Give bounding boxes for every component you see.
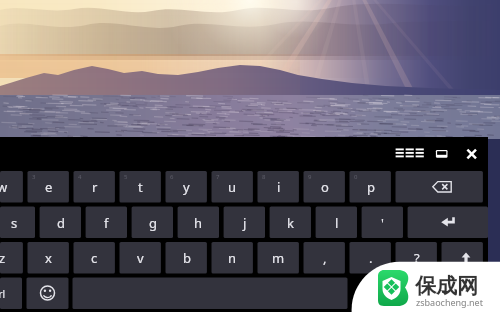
button[interactable]: s xyxy=(0,207,35,239)
staticText: 3 xyxy=(32,173,36,181)
staticText: . xyxy=(369,249,373,267)
button[interactable]: o xyxy=(304,171,345,203)
button[interactable]: d xyxy=(40,207,81,239)
button[interactable]: f xyxy=(86,207,127,239)
button[interactable]: x xyxy=(28,242,69,274)
staticText: zsbaocheng.net xyxy=(416,296,483,308)
staticText: f xyxy=(104,214,109,232)
staticText: 9 xyxy=(308,173,312,181)
staticText: p xyxy=(367,178,375,196)
staticText: v xyxy=(137,249,144,267)
staticText: ? xyxy=(414,249,420,267)
staticText: ' xyxy=(381,214,384,232)
staticText: b xyxy=(183,249,191,267)
staticText: , xyxy=(323,249,327,267)
button[interactable]: g xyxy=(132,207,173,239)
staticText: 6 xyxy=(170,173,174,181)
staticText: d xyxy=(57,214,65,232)
staticText: 5 xyxy=(124,173,128,181)
staticText: 7 xyxy=(216,173,220,181)
staticText: z xyxy=(0,249,6,267)
button[interactable]: u xyxy=(212,171,253,203)
button[interactable]: i xyxy=(258,171,299,203)
staticText: m xyxy=(272,249,285,267)
button[interactable]: c xyxy=(74,242,115,274)
staticText: i xyxy=(277,178,281,196)
button[interactable]: v xyxy=(120,242,161,274)
button[interactable]: ' xyxy=(362,207,403,239)
button[interactable]: ? xyxy=(396,242,437,274)
staticText: 8 xyxy=(262,173,266,181)
staticText: t xyxy=(138,178,143,196)
staticText: x xyxy=(45,249,52,267)
staticText: h xyxy=(194,214,203,232)
button[interactable]: w xyxy=(0,171,23,203)
button[interactable]: z xyxy=(0,242,23,274)
staticText: w xyxy=(0,178,8,196)
button[interactable]: , xyxy=(304,242,345,274)
button[interactable]: y xyxy=(166,171,207,203)
button[interactable]: e xyxy=(28,171,69,203)
staticText: 4 xyxy=(78,173,82,181)
button[interactable]: t xyxy=(120,171,161,203)
button[interactable]: p xyxy=(350,171,391,203)
button[interactable]: m xyxy=(258,242,299,274)
staticText: 保成网 xyxy=(415,273,478,299)
button[interactable]: j xyxy=(224,207,265,239)
staticText: y xyxy=(183,178,190,196)
button[interactable]: b xyxy=(166,242,207,274)
button[interactable]: . xyxy=(350,242,391,274)
staticText: o xyxy=(321,178,329,196)
button[interactable]: n xyxy=(212,242,253,274)
staticText: s xyxy=(11,214,18,232)
button[interactable]: r xyxy=(74,171,115,203)
staticText: k xyxy=(287,214,294,232)
staticText: l xyxy=(335,214,339,232)
staticText: c xyxy=(91,249,98,267)
staticText: ctrl xyxy=(0,287,6,301)
staticText: u xyxy=(228,178,237,196)
button[interactable]: k xyxy=(270,207,311,239)
staticText: 0 xyxy=(354,173,358,181)
button[interactable]: ctrl xyxy=(0,278,20,310)
staticText: g xyxy=(149,214,157,232)
staticText: e xyxy=(45,178,53,196)
staticText: r xyxy=(92,178,98,196)
staticText: n xyxy=(228,249,237,267)
button[interactable]: h xyxy=(178,207,219,239)
staticText: j xyxy=(243,214,247,232)
button[interactable]: l xyxy=(316,207,357,239)
